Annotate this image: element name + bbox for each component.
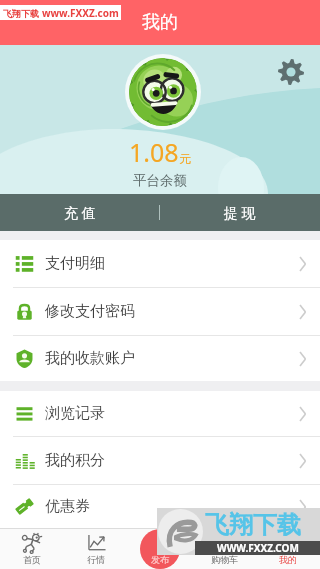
staticText: 修改支付密码 <box>45 302 135 321</box>
staticText: www.FXXZ.com <box>42 6 119 20</box>
button[interactable]: Settings <box>278 59 304 85</box>
button[interactable]: 行情 <box>64 528 128 569</box>
staticText: 我的积分 <box>45 451 105 470</box>
button[interactable]: 我的积分 <box>0 437 320 485</box>
staticText: 充 值 <box>64 203 96 222</box>
staticText: 提 现 <box>224 203 256 222</box>
staticText: 我的收款账户 <box>45 349 135 368</box>
button[interactable]: 发布 <box>140 529 180 569</box>
button[interactable]: 提 现 <box>160 194 320 231</box>
button[interactable]: 修改支付密码 <box>0 288 320 336</box>
staticText: 浏览记录 <box>45 404 105 423</box>
button[interactable]: 浏览记录 <box>0 391 320 437</box>
staticText: 购物车 <box>211 554 238 565</box>
staticText: 1.08 <box>129 135 179 169</box>
staticText: 飞翔下载 <box>3 8 39 19</box>
staticText: 发布 <box>151 554 169 565</box>
button[interactable]: 充 值 <box>0 194 159 231</box>
staticText: 飞翔下载 <box>205 510 301 540</box>
staticText: WWW.FXXZ.COM <box>217 541 299 555</box>
staticText: 我的 <box>279 554 297 565</box>
button[interactable]: 我的 <box>256 528 320 569</box>
button[interactable]: 首页 <box>0 528 64 569</box>
button[interactable]: 优惠券 <box>0 485 320 528</box>
staticText: 元 <box>179 151 191 166</box>
staticText: 支付明细 <box>45 254 105 273</box>
staticText: 我的 <box>142 11 178 34</box>
staticText: 平台余额 <box>133 172 187 189</box>
staticText: 行情 <box>87 554 105 565</box>
button[interactable]: 购物车 <box>192 528 256 569</box>
staticText: 优惠券 <box>45 497 90 516</box>
button[interactable]: 支付明细 <box>0 240 320 288</box>
button[interactable]: 我的收款账户 <box>0 336 320 381</box>
staticText: 首页 <box>23 554 41 565</box>
